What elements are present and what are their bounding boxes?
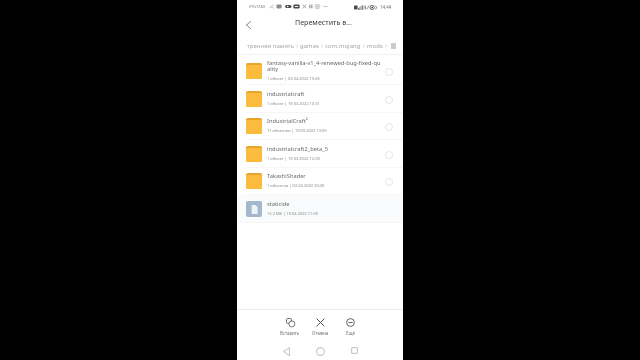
staticText: mods <box>367 42 383 50</box>
staticText: games <box>300 42 319 50</box>
staticText: staticide <box>267 200 290 208</box>
button[interactable]: Back <box>240 17 256 33</box>
button[interactable]: Switch view <box>387 40 399 52</box>
button[interactable]: Ещё <box>335 309 365 337</box>
staticText: 1 объектов | 02.04.2022 20:30 <box>267 183 325 188</box>
staticText: TakashiShader <box>267 172 306 180</box>
staticText: 1 объект | 19.03.2022 13:31 <box>267 101 320 106</box>
staticText: 1 объект | 03.04.2022 19:45 <box>267 76 320 81</box>
staticText: industrialcraft <box>267 90 305 98</box>
button[interactable]: Home <box>303 341 337 360</box>
staticText: 1 объект | 19.03.2022 12:39 <box>267 156 320 161</box>
button[interactable]: Recent apps <box>337 341 371 360</box>
staticText: 11 объектов | 19.03.2022 13:59 <box>267 128 327 133</box>
button[interactable]: IndustrialCraft² <box>237 112 403 140</box>
button[interactable]: Back <box>269 341 303 360</box>
button[interactable]: Отмена <box>305 309 335 337</box>
staticText: IndustrialCraft² <box>267 117 308 125</box>
staticText: 13.2 МБ | 19.04.2022 11:09 <box>267 211 319 216</box>
staticText: Отмена <box>312 330 329 336</box>
button[interactable]: industrialcraft <box>237 85 403 113</box>
staticText: industrialcraft2_beta_5 <box>267 145 328 153</box>
button[interactable]: Вставить <box>275 309 305 337</box>
staticText: Переместить в... <box>295 18 352 28</box>
staticText: fantasy-vanilla-v1_4-renewed-bug-fixed-q… <box>267 59 381 73</box>
staticText: 14:44 <box>380 4 392 10</box>
button[interactable]: fantasy-vanilla-v1_4-renewed-bug-fixed-q… <box>237 57 403 85</box>
button[interactable]: staticide <box>237 195 403 223</box>
staticText: KYIVSTAR <box>249 4 266 9</box>
staticText: com.mojang <box>325 42 361 50</box>
staticText: Вставить <box>280 330 300 336</box>
staticText: Ещё <box>346 330 355 336</box>
button[interactable]: TakashiShader <box>237 167 403 195</box>
button[interactable]: industrialcraft2_beta_5 <box>237 140 403 168</box>
staticText: тренняя память <box>247 42 294 50</box>
